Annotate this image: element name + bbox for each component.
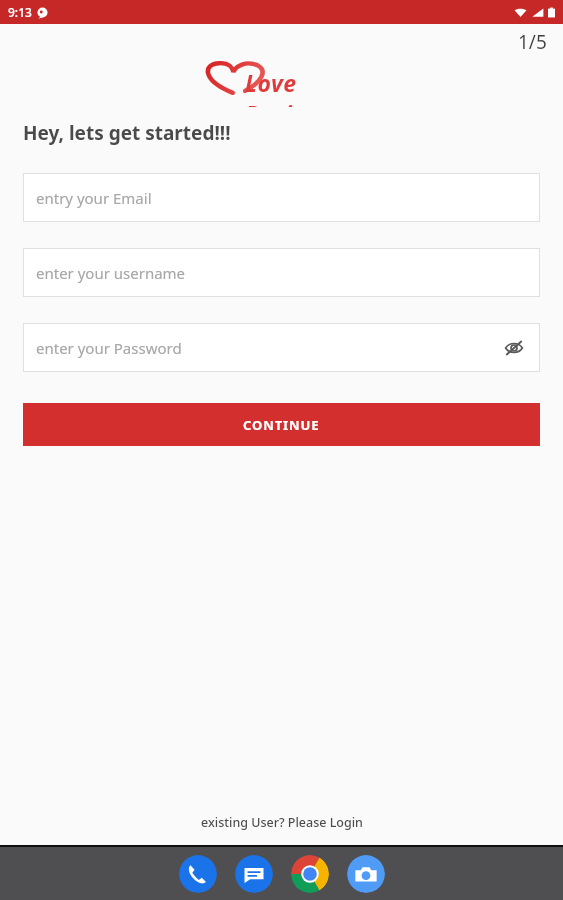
staticText: 9:13: [8, 4, 32, 20]
button[interactable]: Chrome: [291, 855, 329, 893]
staticText: CONTINUE: [243, 416, 320, 434]
staticText: Love Dating: [245, 67, 372, 107]
button[interactable]: Toggle password visibility: [502, 336, 526, 360]
staticText: 1/5: [518, 29, 547, 55]
button[interactable]: CONTINUE: [23, 403, 540, 446]
staticText: entry your Email: [36, 188, 152, 208]
button[interactable]: enter your username: [23, 248, 540, 297]
staticText: enter your username: [36, 263, 186, 283]
button[interactable]: existing User? Please Login: [189, 810, 375, 835]
staticText: existing User? Please Login: [201, 814, 363, 831]
button[interactable]: Phone: [179, 855, 217, 893]
staticText: Hey, lets get started!!!: [23, 120, 231, 146]
button[interactable]: entry your Email: [23, 173, 540, 222]
button[interactable]: Messages: [235, 855, 273, 893]
staticText: enter your Password: [36, 338, 182, 358]
button[interactable]: Camera: [347, 855, 385, 893]
button[interactable]: enter your Password: [23, 323, 540, 372]
